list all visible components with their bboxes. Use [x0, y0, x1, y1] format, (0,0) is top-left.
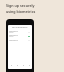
staticText: Fingerprint	[9, 34, 18, 36]
button[interactable]: Tab 2	[14, 63, 20, 67]
button[interactable]: Tab 4	[26, 63, 32, 67]
button[interactable]: Tab 1	[8, 63, 14, 67]
button[interactable]: Fingerprint	[8, 30, 32, 34]
staticText: Fingerprint	[9, 30, 18, 32]
staticText: Secure	[9, 36, 14, 38]
staticText: Sign up securely	[6, 3, 35, 8]
button[interactable]: Fingerprint	[8, 34, 32, 38]
staticText: Set up biometrics	[12, 26, 28, 28]
button[interactable]: Tab 3	[20, 63, 26, 67]
staticText: Secure	[9, 32, 14, 34]
button[interactable]: Fingerprint	[8, 38, 32, 42]
staticText: Fingerprint	[9, 39, 18, 41]
staticText: using biometrics	[6, 9, 36, 14]
